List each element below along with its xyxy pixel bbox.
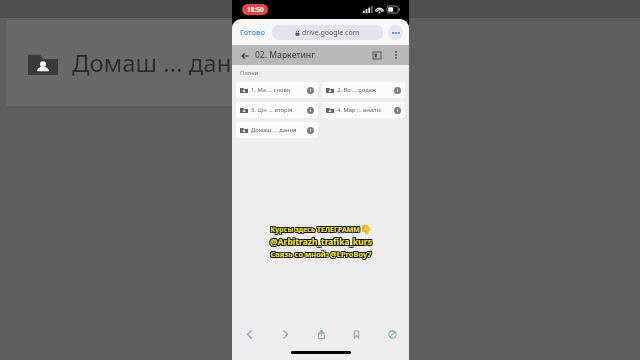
staticText: Связь со мной: @LProBoy7 [269,248,371,258]
staticText: Курсы здесь ТЕЛЕГРАММ 👇 [271,224,372,234]
staticText: drive.google.com [302,28,360,38]
staticText: Курсы здесь ТЕЛЕГРАММ 👇 [269,225,370,235]
staticText: @Arbitrazh_trafika_kurs [270,235,372,247]
staticText: 18:50 [247,5,264,14]
button[interactable]: 2. Во ... родаж [322,82,405,98]
button[interactable]: Готово [238,23,267,41]
staticText: 02. Маркетинг [255,49,315,61]
staticText: Домаш ... дання [72,46,260,79]
button[interactable]: 4. Мар ... аналіз [322,102,405,118]
button[interactable]: drive.google.com [272,25,383,40]
staticText: Связь со мной: @LProBoy7 [270,249,372,259]
button[interactable]: Bookmarks [347,325,365,343]
staticText: Связь со мной: @LProBoy7 [269,250,371,260]
button[interactable]: More options [388,25,403,40]
staticText: Связь со мной: @LProBoy7 [271,249,373,259]
staticText: Домаш ... дання [251,126,307,134]
button[interactable]: Grid view [370,48,384,62]
staticText: 4. Мар ... аналіз [337,106,394,114]
staticText: Связь со мной: @LProBoy7 [271,248,373,258]
staticText: Готово [240,27,265,37]
staticText: Связь со мной: @LProBoy7 [270,250,372,260]
staticText: 1. Ма ... сновн [251,86,307,94]
staticText: Курсы здесь ТЕЛЕГРАММ 👇 [269,224,370,234]
staticText: Курсы здесь ТЕЛЕГРАММ 👇 [269,226,370,236]
button[interactable]: More [389,48,403,62]
staticText: @Arbitrazh_trafika_kurs [271,236,373,248]
staticText: Курсы здесь ТЕЛЕГРАММ 👇 [271,225,372,235]
button[interactable]: Tabs [383,325,401,343]
staticText: 3. Цін ... иторія [251,106,307,114]
staticText: Папки [240,69,259,77]
staticText: @Arbitrazh_trafika_kurs [269,235,371,247]
staticText: Курсы здесь ТЕЛЕГРАММ 👇 [271,226,372,236]
staticText: Связь со мной: @LProBoy7 [270,248,372,258]
staticText: Курсы здесь ТЕЛЕГРАММ 👇 [270,226,371,236]
staticText: @Arbitrazh_trafika_kurs [269,236,371,248]
staticText: @Arbitrazh_trafika_kurs [269,237,371,249]
staticText: Связь со мной: @LProBoy7 [269,249,371,259]
staticText: Связь со мной: @LProBoy7 [271,250,373,260]
button[interactable]: Forward [276,325,294,343]
button[interactable]: Back [238,49,251,62]
staticText: @Arbitrazh_trafika_kurs [271,235,373,247]
staticText: @Arbitrazh_trafika_kurs [270,237,372,249]
staticText: Курсы здесь ТЕЛЕГРАММ 👇 [270,224,371,234]
staticText: @Arbitrazh_trafika_kurs [270,236,372,248]
button[interactable]: 1. Ма ... сновн [236,82,318,98]
staticText: Курсы здесь ТЕЛЕГРАММ 👇 [270,225,371,235]
staticText: @Arbitrazh_trafika_kurs [271,237,373,249]
button[interactable]: Домаш ... дання [236,122,318,138]
button[interactable]: Back [240,325,258,343]
staticText: 2. Во ... родаж [337,86,394,94]
button[interactable]: Share [312,325,330,343]
button[interactable]: 3. Цін ... иторія [236,102,318,118]
